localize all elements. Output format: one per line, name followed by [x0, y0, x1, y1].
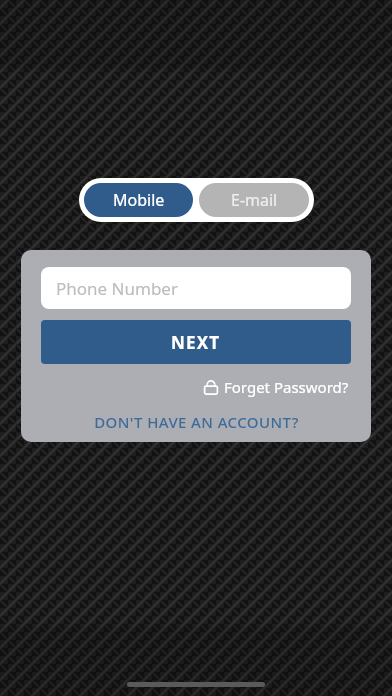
staticText: Mobile [113, 189, 165, 211]
staticText: E-mail [231, 189, 278, 211]
staticText: Forget Password? [224, 377, 349, 397]
button[interactable]: E-mail [199, 183, 309, 217]
button[interactable]: DON'T HAVE AN ACCOUNT? [41, 409, 351, 435]
button[interactable]: NEXT [41, 320, 351, 364]
staticText: Phone Number [56, 277, 178, 300]
button[interactable]: Mobile [84, 183, 193, 217]
staticText: NEXT [171, 331, 221, 354]
staticText: DON'T HAVE AN ACCOUNT? [94, 412, 299, 432]
button[interactable]: Lock [201, 375, 351, 399]
button[interactable]: Phone Number [41, 267, 351, 309]
other: Lock [203, 379, 219, 395]
